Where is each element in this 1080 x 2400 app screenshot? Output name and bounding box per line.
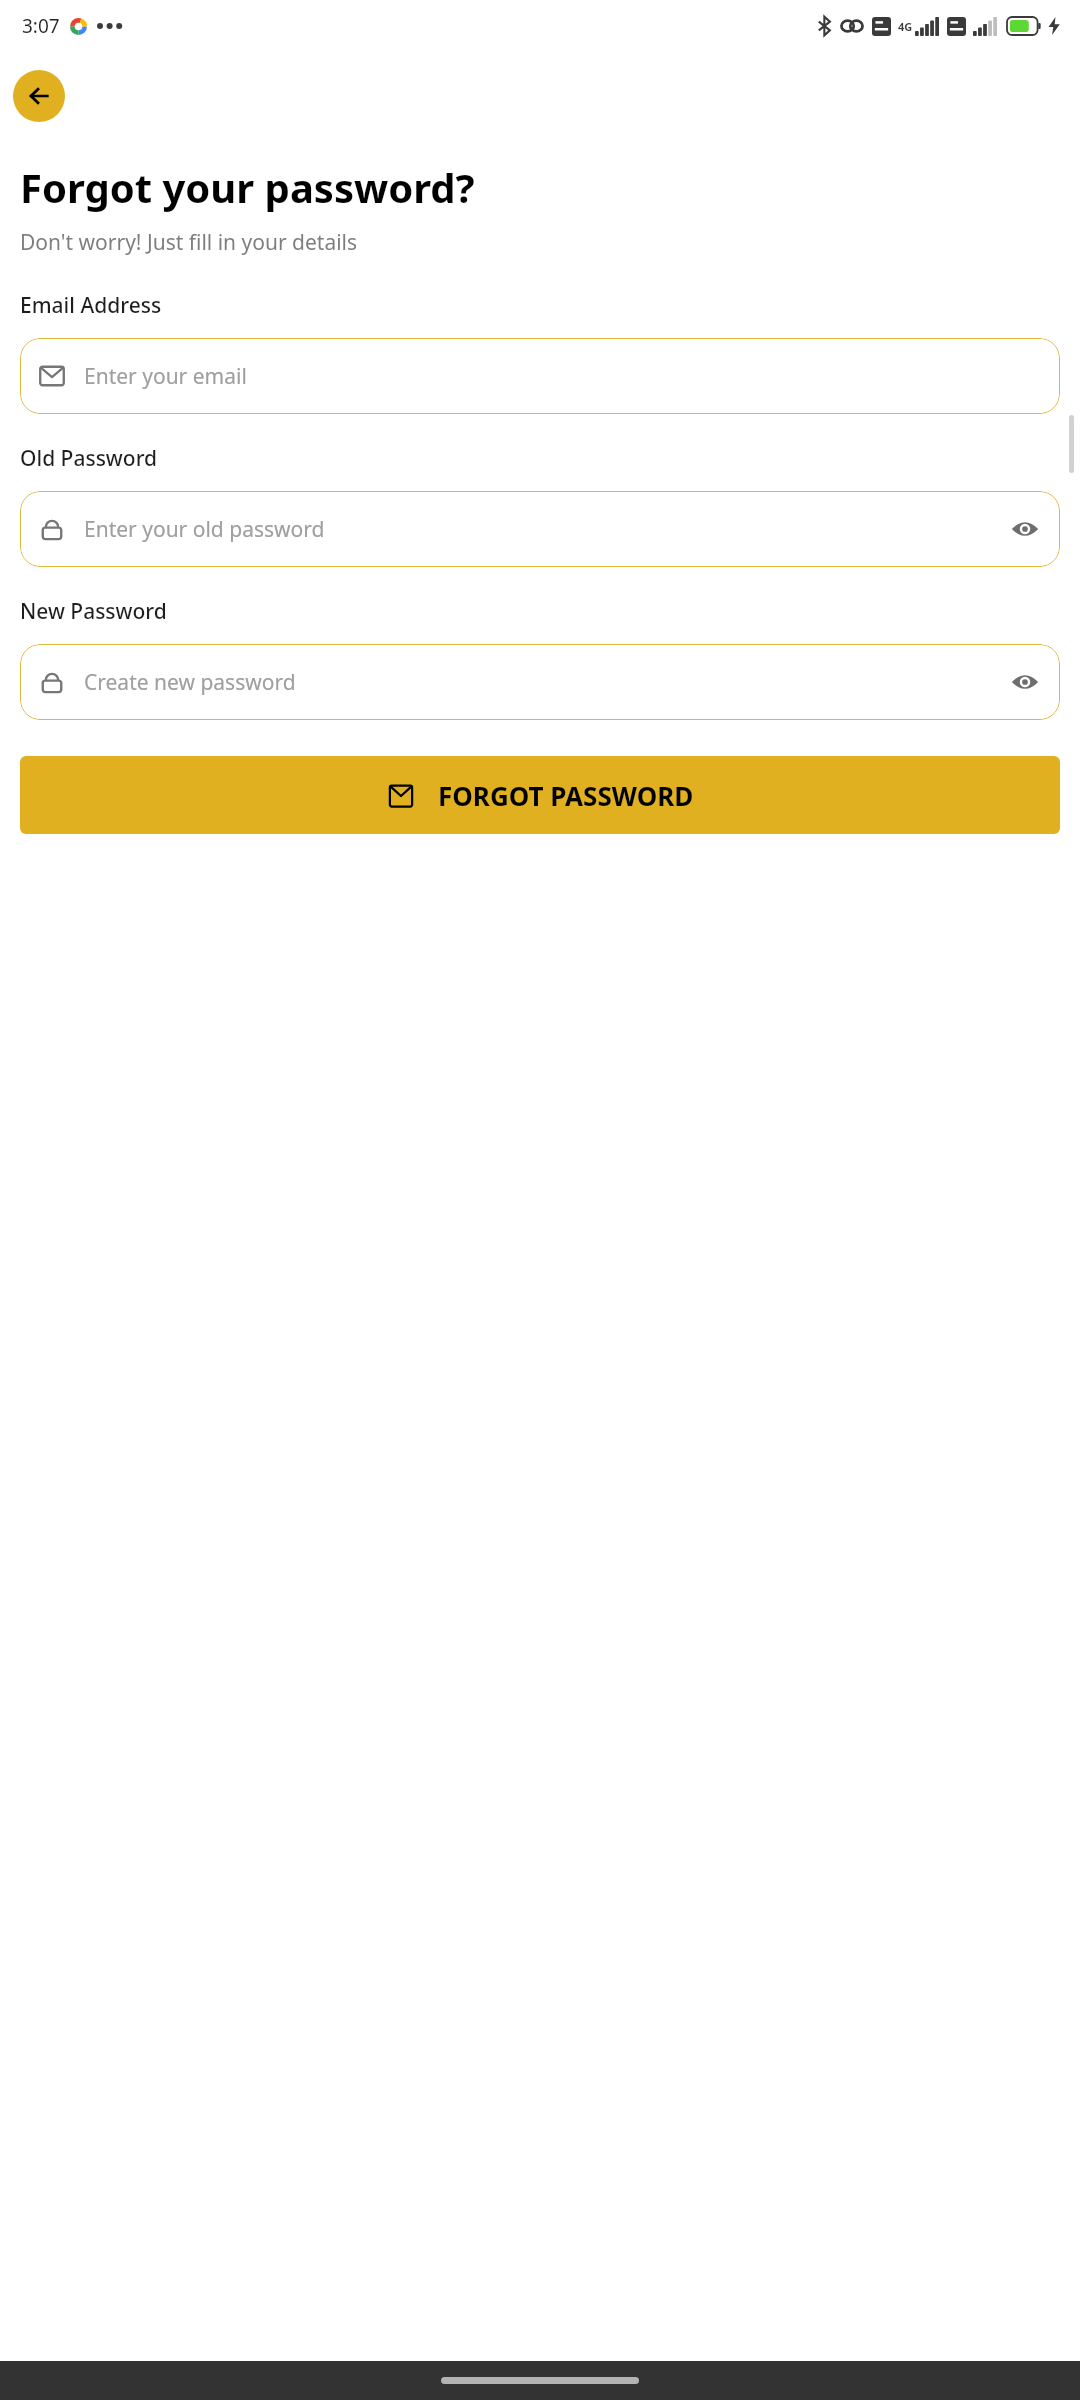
staticText: Enter your old password (84, 515, 325, 544)
staticText: 4G (898, 19, 913, 34)
staticText: Enter your email (84, 362, 247, 391)
staticText: 3:07 (22, 13, 60, 39)
staticText: Create new password (84, 668, 296, 697)
button[interactable]: Create new password (20, 644, 1060, 720)
button[interactable]: Show password (1008, 665, 1042, 699)
staticText: New Password (20, 597, 167, 626)
button[interactable]: Show password (1008, 512, 1042, 546)
staticText: Don't worry! Just fill in your details (20, 228, 358, 257)
staticText: Old Password (20, 444, 158, 473)
button[interactable]: FORGOT PASSWORD (20, 756, 1060, 834)
staticText: Email Address (20, 291, 162, 320)
button[interactable]: Enter your email (20, 338, 1060, 414)
button[interactable]: Enter your old password (20, 491, 1060, 567)
staticText: FORGOT PASSWORD (438, 778, 694, 813)
button[interactable]: Back (13, 70, 65, 122)
staticText: Forgot your password? (20, 160, 475, 214)
